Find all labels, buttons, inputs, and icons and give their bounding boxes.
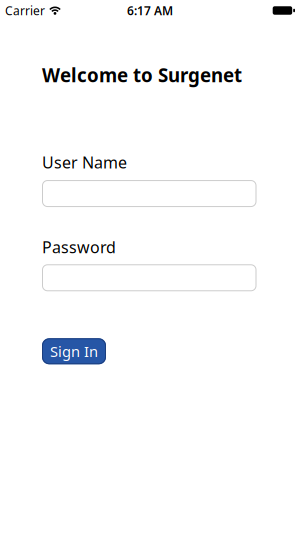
- staticText: Carrier: [5, 2, 45, 18]
- staticText: Sign In: [50, 341, 98, 361]
- button[interactable]: Sign In: [42, 338, 106, 364]
- button[interactable]: Password: [42, 264, 256, 291]
- staticText: User Name: [42, 152, 127, 173]
- button[interactable]: User Name: [42, 180, 256, 207]
- staticText: Password: [42, 236, 116, 258]
- staticText: 6:17 AM: [127, 2, 173, 18]
- staticText: Welcome to Surgenet: [42, 62, 242, 87]
